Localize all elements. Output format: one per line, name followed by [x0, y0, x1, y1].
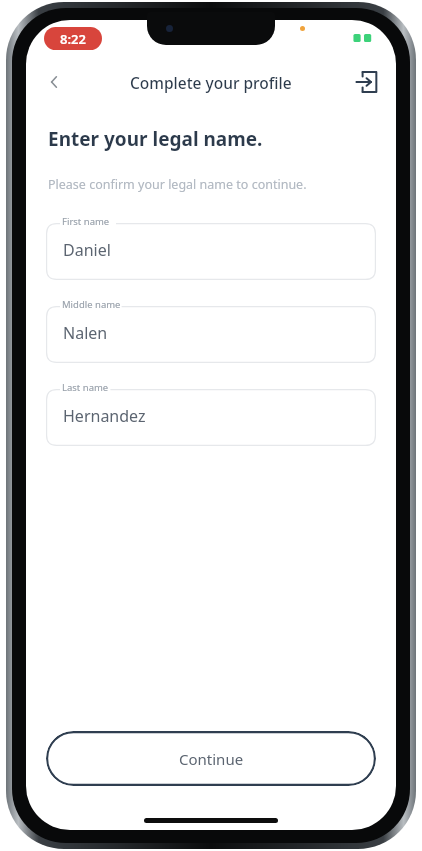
staticText: 8:22	[60, 30, 86, 48]
staticText: First name	[62, 215, 110, 228]
staticText: Please confirm your legal name to contin…	[48, 176, 307, 193]
staticText: Nalen	[63, 322, 108, 344]
staticText: Last name	[62, 381, 109, 394]
button[interactable]: Log out	[346, 61, 388, 103]
button[interactable]: Continue	[46, 731, 376, 786]
button[interactable]: Middle name	[46, 297, 376, 363]
staticText: Middle name	[62, 298, 121, 311]
button[interactable]: First name	[46, 214, 376, 280]
staticText: Hernandez	[63, 405, 146, 427]
button[interactable]: Last name	[46, 380, 376, 446]
staticText: Enter your legal name.	[48, 126, 263, 152]
staticText: Continue	[179, 749, 244, 769]
staticText: Daniel	[63, 239, 111, 261]
button[interactable]: Back	[32, 60, 76, 104]
other: Battery charging	[352, 31, 376, 45]
staticText: Complete your profile	[130, 72, 292, 93]
